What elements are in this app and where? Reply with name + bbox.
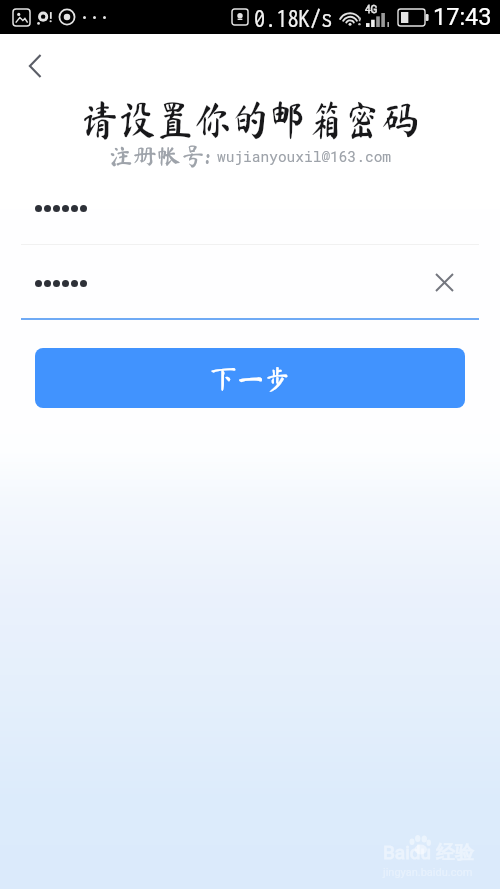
button[interactable]: 下一步 bbox=[35, 348, 465, 408]
staticText: 0.18K/s bbox=[254, 3, 333, 32]
staticText: jingyan.baidu.com bbox=[383, 866, 473, 879]
button[interactable]: Back bbox=[10, 44, 56, 88]
staticText: 注册帐号: bbox=[109, 144, 211, 168]
staticText: 4G bbox=[365, 4, 378, 16]
staticText: 请设置你的邮箱密码 bbox=[81, 98, 419, 140]
staticText: wujianyouxil@163.com bbox=[217, 147, 392, 166]
button[interactable]: Clear password bbox=[421, 259, 467, 305]
staticText: Baidu 经验 bbox=[383, 841, 474, 865]
staticText: 下一步 bbox=[210, 365, 291, 392]
staticText: 17:43 bbox=[433, 3, 492, 31]
